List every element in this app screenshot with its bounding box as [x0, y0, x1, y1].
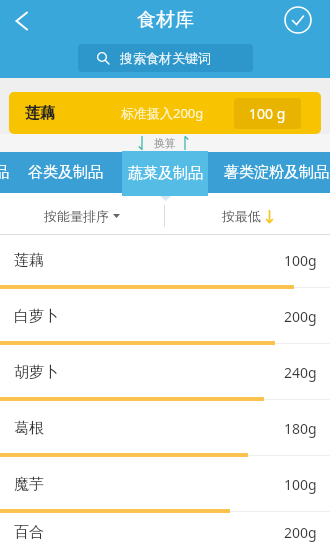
button[interactable]: 莲藕	[0, 235, 330, 291]
staticText: 100g	[284, 251, 317, 270]
staticText: 谷类及制品	[28, 163, 103, 182]
button[interactable]: 谷类及制品	[28, 163, 103, 182]
button[interactable]: 蔬菜及制品	[122, 151, 208, 196]
staticText: 100 g	[249, 104, 286, 123]
staticText: 按能量排序	[44, 208, 109, 224]
staticText: 200g	[284, 307, 317, 326]
button[interactable]: 品	[0, 163, 9, 182]
button[interactable]: 按最低	[165, 197, 330, 235]
staticText: 搜索食材关键词	[120, 50, 211, 66]
button[interactable]: 按能量排序	[0, 197, 164, 235]
staticText: 胡萝卜	[14, 363, 59, 382]
staticText: 180g	[284, 419, 317, 438]
staticText: 按最低	[222, 208, 261, 224]
staticText: 莲藕	[14, 251, 44, 270]
button[interactable]: 莲藕	[9, 92, 321, 134]
staticText: 240g	[284, 363, 317, 382]
staticText: 换算	[154, 136, 176, 150]
staticText: 品	[0, 163, 9, 182]
button[interactable]: 搜索食材关键词	[78, 44, 253, 72]
button[interactable]: 葛根	[0, 403, 330, 459]
button[interactable]: 魔芋	[0, 459, 330, 515]
staticText: 莲藕	[25, 104, 55, 123]
button[interactable]	[279, 0, 317, 40]
staticText: 白萝卜	[14, 307, 59, 326]
staticText: 食材库	[137, 8, 194, 32]
staticText: 100g	[284, 475, 317, 494]
button[interactable]: 百合	[0, 515, 330, 550]
staticText: 薯类淀粉及制品	[224, 163, 329, 182]
button[interactable]: 白萝卜	[0, 291, 330, 347]
staticText: 百合	[14, 523, 44, 542]
staticText: 蔬菜及制品	[128, 164, 203, 183]
staticText: 魔芋	[14, 475, 44, 494]
staticText: 葛根	[14, 419, 44, 438]
staticText: 标准摄入200g	[121, 104, 204, 122]
button[interactable]: 胡萝卜	[0, 347, 330, 403]
staticText: 200g	[284, 523, 317, 542]
button[interactable]: 薯类淀粉及制品	[224, 163, 329, 182]
button[interactable]	[0, 0, 42, 41]
